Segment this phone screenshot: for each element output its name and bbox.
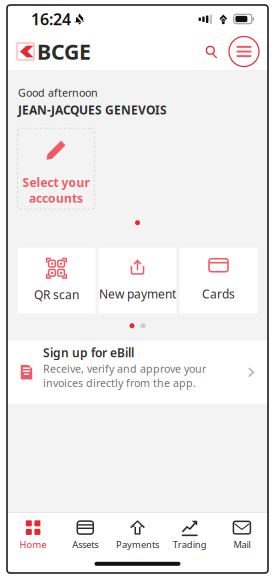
staticText: Mail	[233, 538, 250, 550]
staticText: BCGE	[37, 37, 91, 66]
staticText: 16:24	[31, 8, 71, 30]
staticText: Assets	[72, 538, 98, 550]
button[interactable]: Trading	[164, 513, 216, 553]
staticText: Home	[20, 538, 47, 550]
staticText: QR scan	[34, 287, 79, 303]
button[interactable]: Cards	[179, 248, 257, 314]
button[interactable]: Menu	[229, 36, 259, 66]
staticText: Sign up for eBill	[43, 345, 134, 361]
button[interactable]: New payment	[98, 248, 176, 314]
button[interactable]: Home	[7, 513, 59, 553]
staticText: accounts	[29, 190, 83, 206]
button[interactable]: QR scan	[17, 248, 95, 314]
staticText: Cards	[202, 286, 235, 302]
button[interactable]: Payments	[111, 513, 164, 553]
staticText: Payments	[116, 538, 159, 550]
button[interactable]: BCGE	[7, 33, 91, 70]
staticText: Receive, verify and approve your	[43, 362, 206, 376]
button[interactable]: Sign up for eBill	[7, 341, 268, 404]
staticText: Trading	[173, 538, 207, 550]
button[interactable]: Mail	[216, 513, 268, 553]
staticText: JEAN-JACQUES GENEVOIS	[18, 102, 167, 118]
staticText: New payment	[99, 286, 176, 302]
button[interactable]: Select your	[17, 128, 95, 210]
staticText: invoices directly from the app.	[43, 376, 196, 390]
staticText: Select your	[22, 174, 89, 190]
staticText: Good afternoon	[18, 86, 98, 100]
button[interactable]: Search	[200, 40, 223, 63]
button[interactable]: Assets	[59, 513, 111, 553]
